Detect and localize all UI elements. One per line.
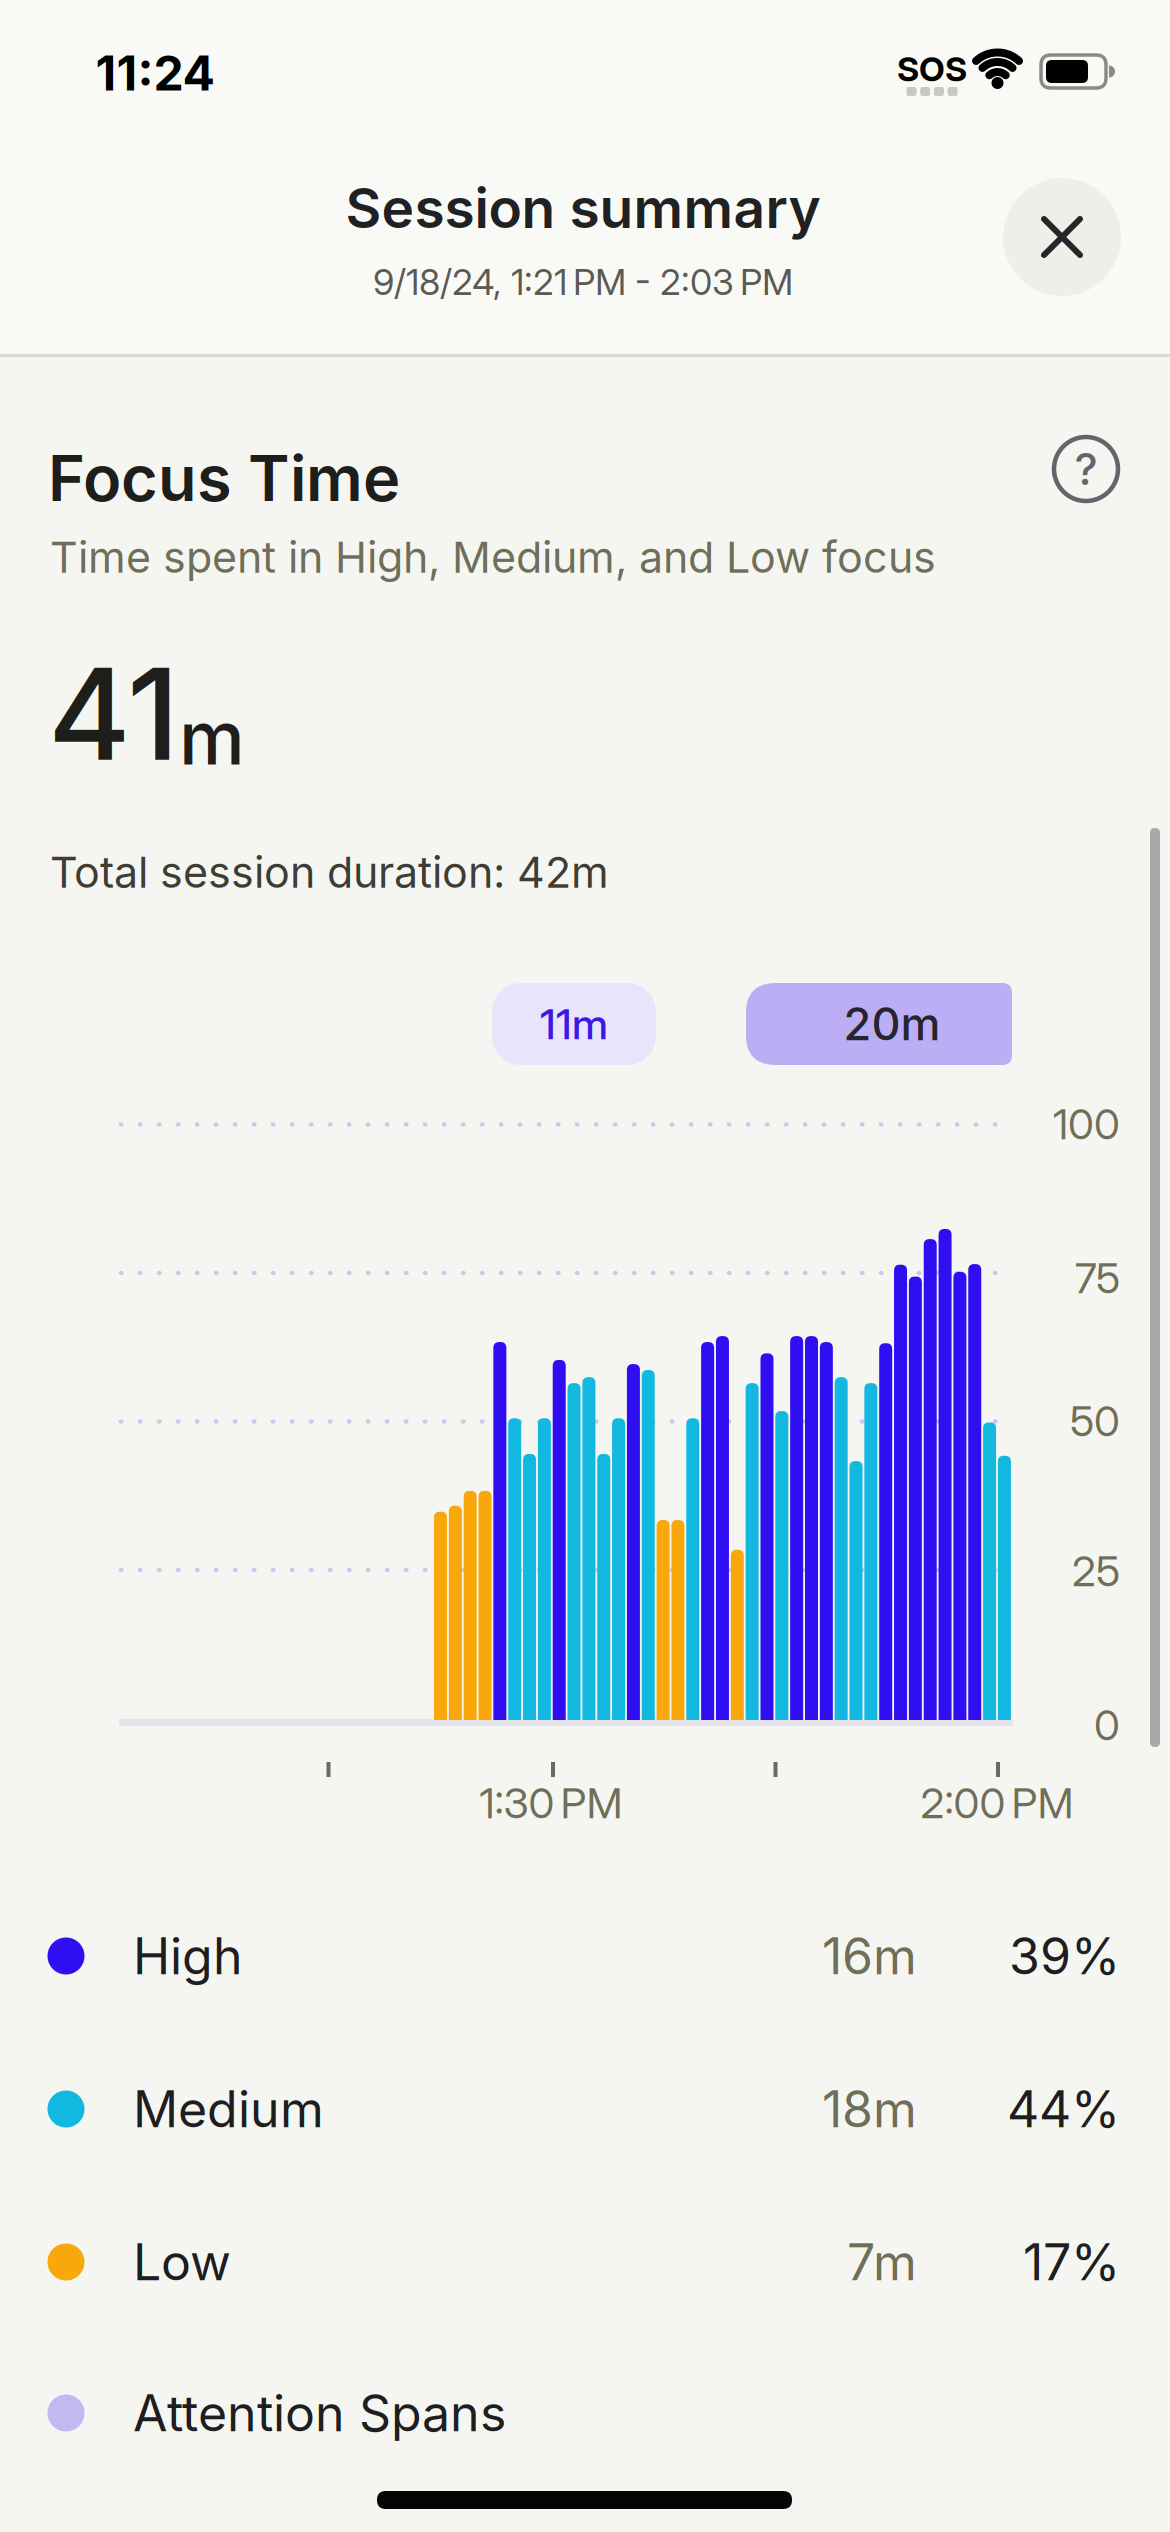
- staticText: 7m: [847, 2232, 917, 2292]
- staticText: Total session duration: 42m: [50, 846, 609, 898]
- staticText: 17%: [1023, 2232, 1120, 2292]
- staticText: 25: [1072, 1546, 1120, 1596]
- staticText: 18m: [822, 2079, 917, 2139]
- staticText: 39%: [1009, 1926, 1120, 1986]
- staticText: 11m: [540, 999, 608, 1049]
- button[interactable]: Help: [1051, 434, 1121, 504]
- staticText: Medium: [133, 2079, 324, 2139]
- staticText: 11:24: [95, 44, 214, 102]
- staticText: Focus Time: [48, 440, 400, 516]
- staticText: 2:00 PM: [920, 1778, 1073, 1828]
- staticText: 100: [1053, 1099, 1120, 1149]
- staticText: High: [133, 1926, 243, 1986]
- staticText: Time spent in High, Medium, and Low focu…: [50, 531, 936, 583]
- staticText: SOS: [897, 48, 967, 89]
- staticText: ?: [1074, 442, 1097, 496]
- staticText: 20m: [843, 997, 940, 1051]
- staticText: 41: [48, 638, 179, 790]
- staticText: 1:30 PM: [479, 1778, 622, 1828]
- button[interactable]: Attention span 11 minutes: [492, 983, 656, 1065]
- staticText: Low: [133, 2232, 231, 2292]
- staticText: Session summary: [345, 175, 820, 241]
- staticText: 16m: [822, 1926, 917, 1986]
- staticText: 50: [1070, 1396, 1120, 1446]
- staticText: 44%: [1007, 2079, 1120, 2139]
- staticText: 75: [1075, 1253, 1120, 1303]
- staticText: 9/18/24, 1:21 PM - 2:03 PM: [373, 260, 793, 304]
- button[interactable]: Attention span 20 minutes: [746, 983, 1012, 1065]
- button[interactable]: Close: [1003, 178, 1121, 296]
- staticText: Attention Spans: [133, 2383, 506, 2443]
- staticText: 0: [1094, 1700, 1120, 1750]
- staticText: m: [179, 693, 245, 782]
